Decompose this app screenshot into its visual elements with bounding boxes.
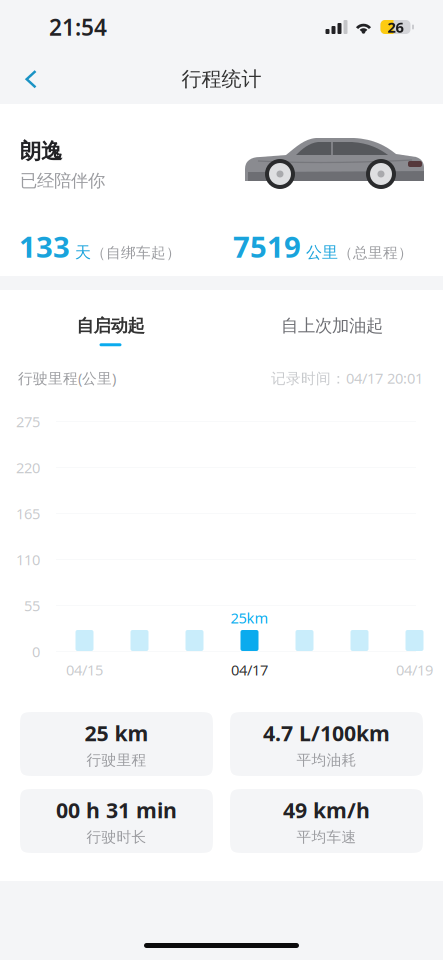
staticText: （总里程） (338, 244, 413, 262)
staticText: 04/15 (66, 660, 103, 679)
staticText: 00 h 31 min (56, 796, 177, 824)
staticText: 行驶里程(公里) (18, 368, 116, 388)
button[interactable]: 自启动起 (0, 290, 221, 352)
staticText: 04/17 (231, 660, 268, 679)
staticText: 26 (387, 17, 403, 37)
button[interactable]: 自上次加油起 (221, 290, 443, 352)
staticText: 行驶里程 (86, 751, 146, 769)
staticText: 已经陪伴你 (20, 170, 105, 191)
staticText: （自绑车起） (91, 244, 181, 262)
staticText: 25km (230, 608, 268, 627)
button[interactable]: 00 h 31 min (20, 789, 213, 853)
staticText: 0 (32, 642, 40, 661)
button[interactable]: Back (9, 57, 53, 101)
button[interactable]: 49 km/h (230, 789, 423, 853)
button[interactable]: 25 km (20, 712, 213, 776)
staticText: 平均油耗 (296, 751, 356, 769)
staticText: 行驶时长 (86, 828, 146, 846)
staticText: 110 (16, 550, 40, 569)
staticText: 自启动起 (76, 315, 144, 336)
staticText: 275 (16, 412, 40, 431)
staticText: 55 (24, 596, 40, 615)
button[interactable]: 4.7 L/100km (230, 712, 423, 776)
staticText: 天 (70, 243, 91, 262)
staticText: 自上次加油起 (281, 315, 383, 336)
staticText: 平均车速 (296, 828, 356, 846)
staticText: 朗逸 (20, 138, 62, 164)
staticText: 04/19 (396, 660, 433, 679)
staticText: 记录时间：04/17 20:01 (271, 368, 423, 388)
staticText: 行程统计 (181, 67, 261, 91)
staticText: 165 (16, 504, 40, 523)
staticText: 220 (16, 458, 40, 477)
staticText: 25 km (84, 719, 148, 747)
staticText: 公里 (301, 243, 338, 262)
staticText: 21:54 (49, 12, 107, 42)
staticText: 4.7 L/100km (263, 719, 390, 747)
staticText: 133 (19, 227, 70, 266)
staticText: 7519 (233, 227, 301, 266)
staticText: 49 km/h (283, 796, 370, 824)
